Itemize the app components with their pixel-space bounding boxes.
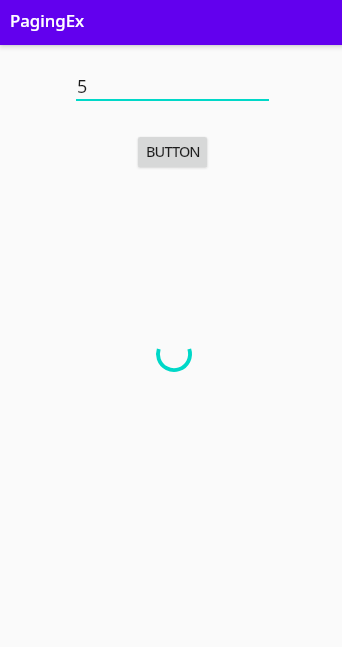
other: Loading: [156, 336, 192, 372]
button[interactable]: BUTTON: [138, 137, 207, 167]
staticText: BUTTON: [146, 141, 200, 161]
button[interactable]: 5: [76, 60, 269, 101]
staticText: PagingEx: [10, 9, 85, 32]
staticText: 5: [77, 74, 88, 99]
